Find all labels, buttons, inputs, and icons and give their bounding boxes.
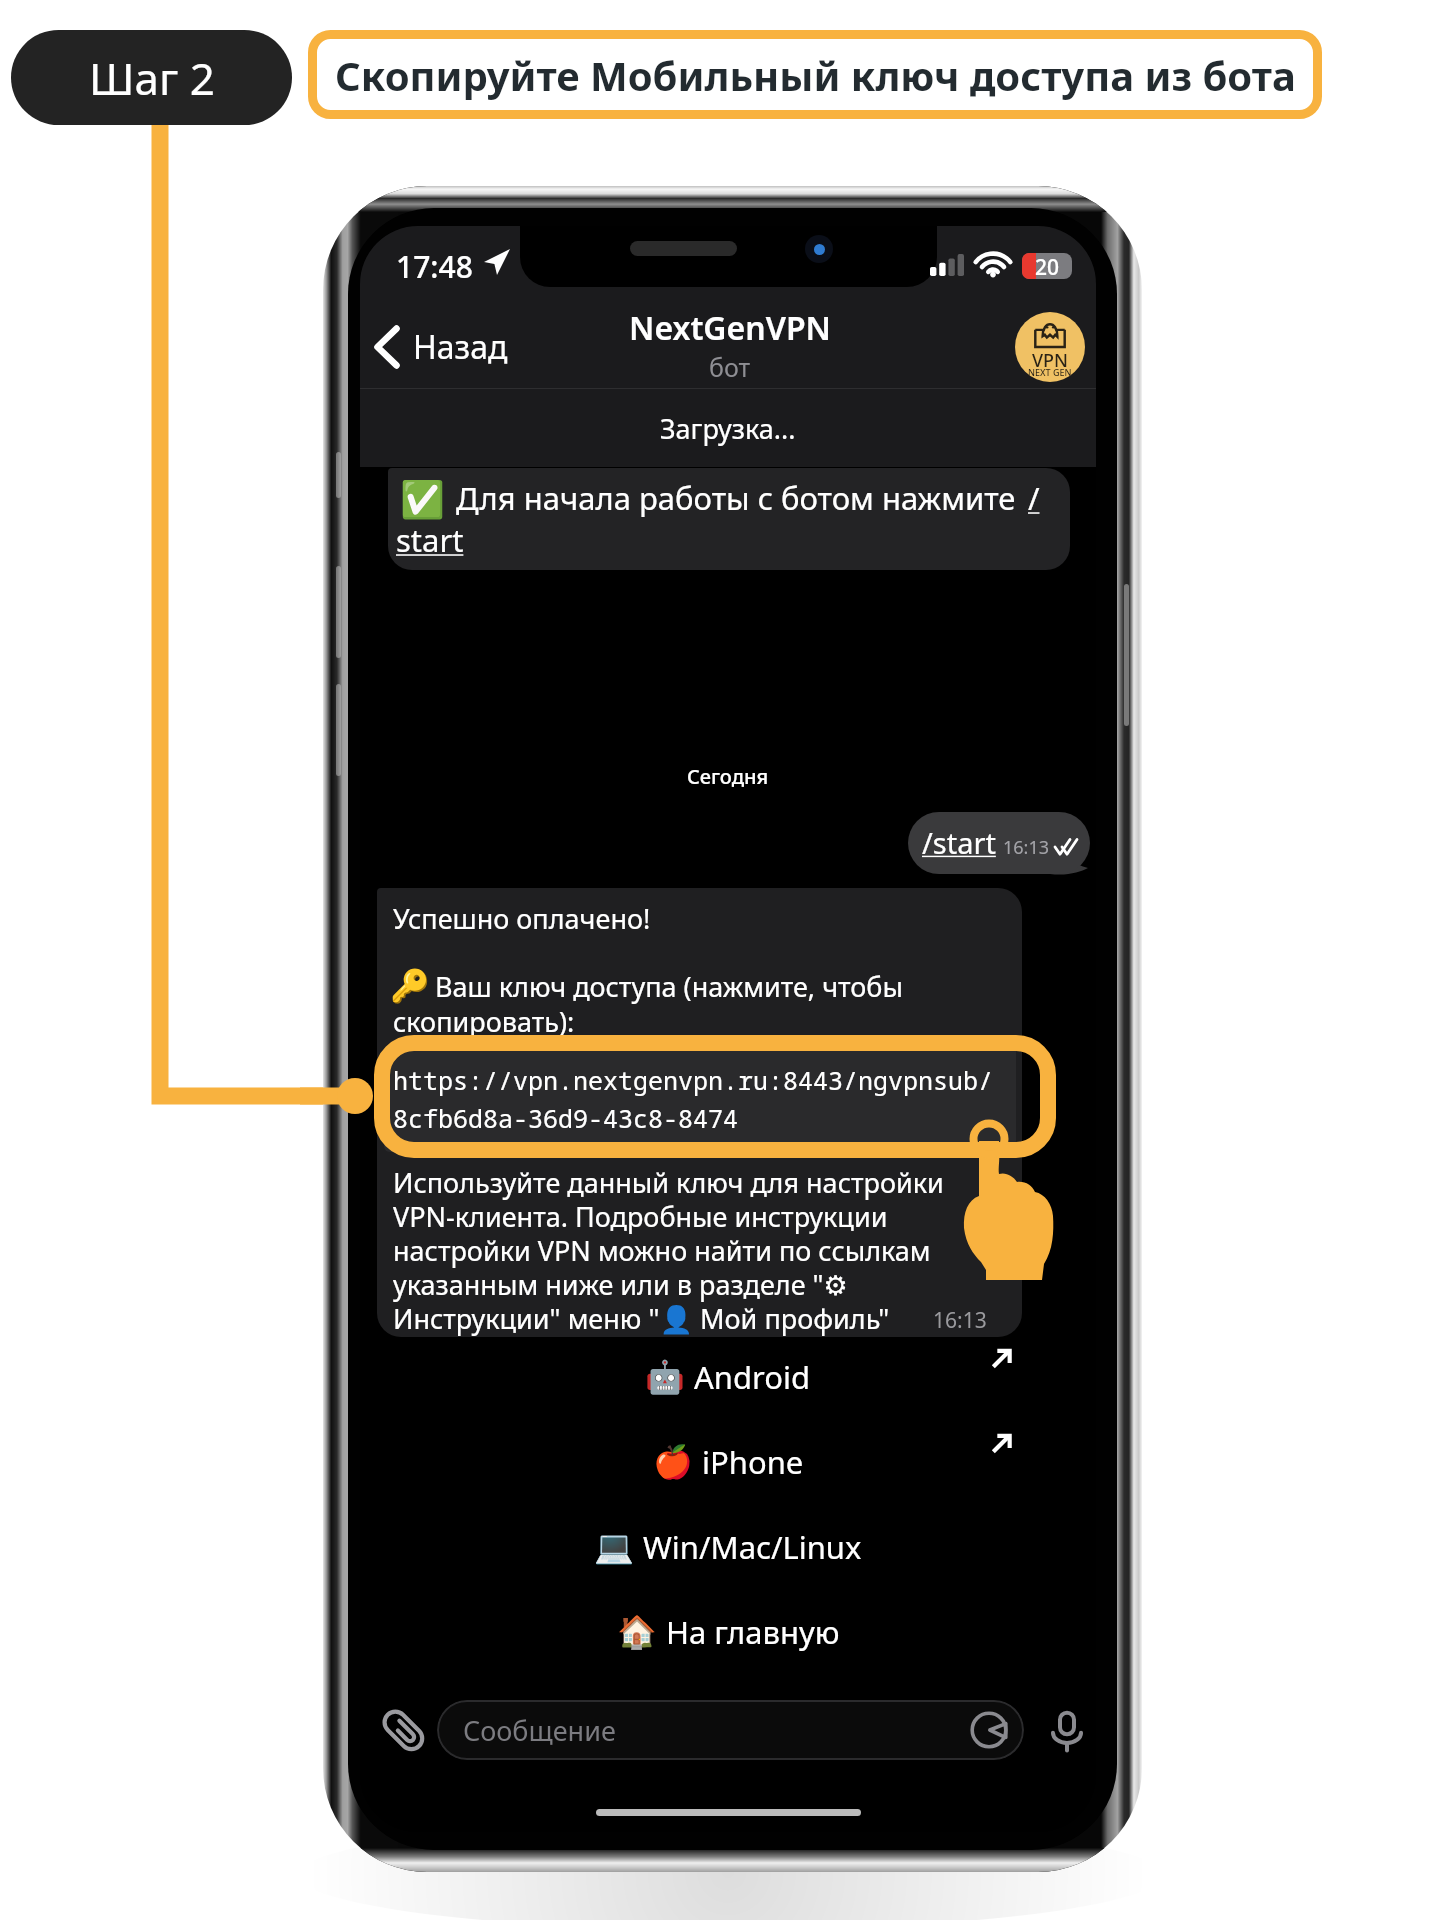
staticText: Win/Mac/Linux: [643, 1526, 862, 1568]
button[interactable]: ✅: [388, 468, 1070, 570]
staticText: 🤖: [645, 1358, 685, 1396]
staticText: 17:48: [396, 246, 473, 287]
staticText: Android: [694, 1356, 811, 1398]
staticText: 16:13: [1003, 835, 1050, 860]
staticText: Сообщение: [463, 1712, 616, 1749]
staticText: Успешно оплачено!: [393, 900, 651, 937]
staticText: На главную: [666, 1611, 840, 1653]
staticText: Для начала работы с ботом нажмите: [456, 477, 1024, 519]
staticText: 🍎: [653, 1443, 693, 1481]
staticText: 20: [1035, 253, 1060, 279]
button[interactable]: Шаг 2: [11, 30, 292, 125]
staticText: NextGenVPN: [629, 306, 831, 350]
button[interactable]: Bot profile: [1015, 312, 1085, 382]
staticText: 🔑: [390, 967, 430, 1005]
button[interactable]: [908, 812, 1090, 874]
button[interactable]: Сообщение: [437, 1700, 1024, 1760]
button[interactable]: https://vpn.nextgenvpn.ru:8443/ngvpnsub/…: [384, 1045, 1016, 1152]
button[interactable]: Record voice message: [1040, 1703, 1094, 1757]
staticText: Используйте данный ключ для настройки VP…: [393, 1164, 959, 1337]
staticText: бот: [709, 350, 751, 384]
staticText: 💻: [594, 1528, 634, 1566]
button[interactable]: 🍎: [360, 1420, 1096, 1504]
staticText: Назад: [413, 325, 508, 369]
staticText: скопировать):: [393, 1003, 575, 1040]
staticText: iPhone: [702, 1441, 804, 1483]
button[interactable]: Назад: [360, 317, 522, 377]
button[interactable]: Attach file: [376, 1703, 430, 1757]
staticText: VPN: [1032, 348, 1069, 373]
button[interactable]: Stickers: [968, 1709, 1010, 1751]
button[interactable]: Успешно оплачено!: [377, 888, 1022, 1337]
staticText: Загрузка...: [660, 410, 796, 447]
staticText: NEXT GEN: [1028, 366, 1072, 378]
staticText: https://vpn.nextgenvpn.ru:8443/ngvpnsub/…: [393, 1063, 994, 1135]
staticText: start: [396, 519, 464, 561]
button[interactable]: 💻: [360, 1505, 1096, 1589]
button[interactable]: 🏠: [360, 1590, 1096, 1674]
button[interactable]: 🤖: [360, 1335, 1096, 1419]
staticText: 16:13: [933, 1306, 987, 1335]
staticText: /: [1028, 477, 1040, 519]
staticText: Скопируйте Мобильный ключ доступа из бот…: [335, 48, 1296, 102]
staticText: Шаг 2: [89, 48, 215, 108]
staticText: Ваш ключ доступа (нажмите, чтобы: [435, 968, 903, 1005]
button[interactable]: Скопируйте Мобильный ключ доступа из бот…: [308, 30, 1322, 119]
staticText: ✅: [400, 479, 445, 521]
staticText: Сегодня: [687, 763, 769, 790]
staticText: /start: [922, 823, 996, 862]
staticText: 🏠: [617, 1613, 657, 1651]
